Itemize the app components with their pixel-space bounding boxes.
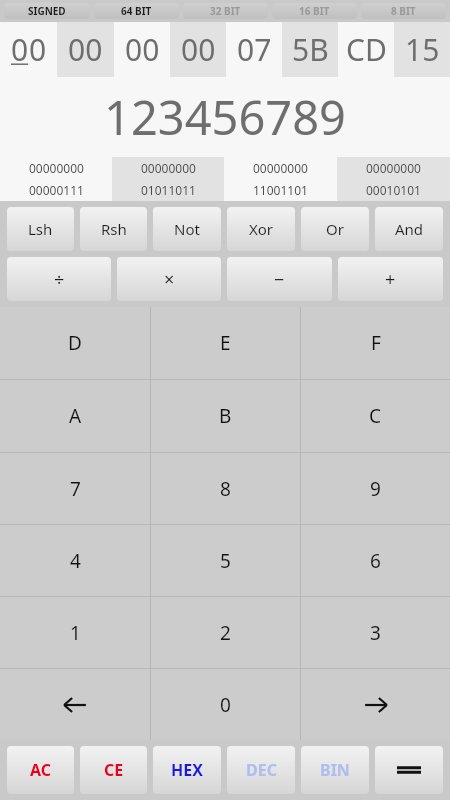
- staticText: Lsh: [28, 219, 53, 239]
- button[interactable]: Multiply: [117, 257, 221, 301]
- button[interactable]: 00: [57, 22, 114, 77]
- staticText: And: [395, 219, 424, 239]
- button[interactable]: 3: [301, 597, 450, 668]
- button[interactable]: 4: [0, 525, 150, 596]
- staticText: 4: [70, 548, 81, 574]
- staticText: 00000000: [29, 160, 84, 176]
- staticText: 8 BIT: [391, 4, 416, 18]
- staticText: 5: [220, 548, 231, 574]
- button[interactable]: D: [0, 307, 150, 379]
- button[interactable]: Xor: [227, 207, 295, 251]
- button[interactable]: C: [301, 380, 450, 452]
- button[interactable]: 6: [301, 525, 450, 596]
- button[interactable]: 8 BIT: [361, 3, 446, 19]
- staticText: 00010101: [366, 182, 421, 198]
- staticText: Rsh: [101, 219, 127, 239]
- staticText: 123456789: [104, 85, 346, 149]
- button[interactable]: 32 BIT: [183, 3, 268, 19]
- button[interactable]: Minus: [227, 257, 332, 301]
- staticText: 7: [70, 476, 81, 502]
- button[interactable]: B: [151, 380, 300, 452]
- staticText: 2: [220, 620, 231, 646]
- staticText: 0: [220, 692, 231, 718]
- button[interactable]: 0: [0, 22, 57, 77]
- button[interactable]: Left: [0, 669, 150, 740]
- staticText: 00000111: [29, 182, 84, 198]
- button[interactable]: BIN: [301, 746, 369, 794]
- button[interactable]: Or: [301, 207, 369, 251]
- staticText: A: [69, 403, 82, 429]
- staticText: F: [371, 330, 381, 356]
- button[interactable]: 00000111: [0, 179, 112, 201]
- staticText: CE: [104, 759, 124, 781]
- staticText: 6: [370, 548, 381, 574]
- button[interactable]: Plus: [338, 257, 443, 301]
- button[interactable]: DEC: [227, 746, 295, 794]
- button[interactable]: 00000000: [224, 157, 337, 179]
- button[interactable]: Equals: [375, 746, 443, 794]
- button[interactable]: Rsh: [80, 207, 147, 251]
- button[interactable]: 9: [301, 453, 450, 524]
- staticText: 64 BIT: [121, 4, 152, 18]
- button[interactable]: 5B: [282, 22, 338, 77]
- button[interactable]: Not: [153, 207, 221, 251]
- button[interactable]: 16 BIT: [272, 3, 357, 19]
- staticText: 0: [29, 29, 47, 70]
- staticText: 00: [68, 29, 103, 70]
- button[interactable]: A: [0, 380, 150, 452]
- button[interactable]: Right: [301, 669, 450, 740]
- button[interactable]: 00000000: [112, 157, 224, 179]
- staticText: C: [369, 403, 382, 429]
- staticText: HEX: [171, 759, 203, 781]
- staticText: 00000000: [141, 160, 196, 176]
- button[interactable]: 64 BIT: [94, 3, 179, 19]
- button[interactable]: 5: [151, 525, 300, 596]
- button[interactable]: 2: [151, 597, 300, 668]
- button[interactable]: 00: [114, 22, 170, 77]
- staticText: 11001101: [253, 182, 308, 198]
- staticText: 01011011: [141, 182, 196, 198]
- staticText: E: [220, 330, 231, 356]
- staticText: 15: [405, 29, 440, 70]
- staticText: Xor: [249, 219, 274, 239]
- button[interactable]: 01011011: [112, 179, 224, 201]
- staticText: 00: [181, 29, 216, 70]
- staticText: 00: [125, 29, 160, 70]
- button[interactable]: HEX: [153, 746, 221, 794]
- button[interactable]: 07: [226, 22, 282, 77]
- button[interactable]: 00000000: [0, 157, 112, 179]
- button[interactable]: 00010101: [337, 179, 450, 201]
- button[interactable]: AC: [7, 746, 74, 794]
- button[interactable]: And: [375, 207, 443, 251]
- staticText: AC: [30, 759, 52, 781]
- button[interactable]: SIGNED: [4, 3, 90, 19]
- button[interactable]: 15: [394, 22, 450, 77]
- button[interactable]: Lsh: [7, 207, 74, 251]
- staticText: −: [274, 267, 285, 292]
- button[interactable]: CE: [80, 746, 147, 794]
- staticText: DEC: [246, 759, 277, 781]
- staticText: 00000000: [253, 160, 308, 176]
- staticText: B: [219, 403, 232, 429]
- staticText: D: [68, 330, 82, 356]
- button[interactable]: 7: [0, 453, 150, 524]
- button[interactable]: 1: [0, 597, 150, 668]
- staticText: 32 BIT: [210, 4, 241, 18]
- staticText: ×: [164, 267, 175, 292]
- staticText: 8: [220, 476, 231, 502]
- staticText: +: [385, 267, 396, 292]
- button[interactable]: E: [151, 307, 300, 379]
- staticText: 9: [370, 476, 381, 502]
- staticText: 3: [370, 620, 381, 646]
- button[interactable]: 00000000: [337, 157, 450, 179]
- button[interactable]: 0: [151, 669, 300, 740]
- staticText: BIN: [320, 759, 350, 781]
- button[interactable]: CD: [338, 22, 394, 77]
- staticText: 00000000: [366, 160, 421, 176]
- button[interactable]: 8: [151, 453, 300, 524]
- button[interactable]: Divide: [7, 257, 111, 301]
- staticText: 07: [237, 29, 272, 70]
- button[interactable]: F: [301, 307, 450, 379]
- button[interactable]: 11001101: [224, 179, 337, 201]
- button[interactable]: 00: [170, 22, 226, 77]
